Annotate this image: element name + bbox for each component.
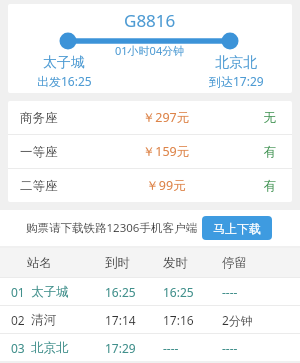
staticText: 发时: [163, 255, 222, 271]
staticText: 16:25: [105, 284, 163, 300]
staticText: ￥159元: [100, 143, 232, 160]
staticText: ￥297元: [100, 109, 232, 126]
staticText: 购票请下载铁路12306手机客户端: [26, 220, 197, 236]
staticText: 北京北: [215, 54, 257, 72]
staticText: 03: [11, 340, 25, 356]
staticText: 01: [11, 284, 25, 300]
staticText: 二等座: [20, 178, 100, 194]
staticText: 太子城: [43, 54, 85, 72]
staticText: 02: [11, 312, 25, 328]
staticText: 商务座: [20, 110, 100, 126]
staticText: ----: [163, 340, 222, 356]
staticText: ----: [222, 340, 272, 356]
button[interactable]: 二等座: [8, 169, 292, 202]
staticText: 17:16: [163, 312, 222, 328]
staticText: 2分钟: [222, 312, 272, 328]
staticText: 有: [232, 144, 276, 160]
staticText: 有: [232, 178, 276, 194]
staticText: 01小时04分钟: [115, 43, 185, 58]
staticText: 17:29: [105, 340, 163, 356]
staticText: 北京北: [31, 340, 69, 356]
button[interactable]: 一等座: [8, 135, 292, 168]
staticText: 出发16:25: [37, 73, 92, 89]
button[interactable]: 马上下载: [202, 216, 272, 240]
staticText: 17:14: [105, 312, 163, 328]
button[interactable]: 商务座: [8, 101, 292, 134]
button[interactable]: 02: [0, 306, 300, 333]
staticText: 马上下载: [213, 221, 261, 236]
staticText: 一等座: [20, 144, 100, 160]
staticText: ----: [222, 284, 272, 300]
staticText: 太子城: [31, 284, 69, 300]
staticText: 停留: [222, 255, 272, 271]
staticText: 站名: [27, 255, 105, 271]
staticText: G8816: [124, 9, 176, 32]
staticText: 16:25: [163, 284, 222, 300]
staticText: 到达17:29: [209, 73, 264, 89]
staticText: 无: [232, 110, 276, 126]
button[interactable]: G8816: [8, 4, 292, 93]
staticText: 清河: [31, 312, 56, 328]
staticText: ￥99元: [100, 177, 232, 194]
button[interactable]: 03: [0, 334, 300, 361]
staticText: 到时: [105, 255, 163, 271]
button[interactable]: 01: [0, 278, 300, 305]
